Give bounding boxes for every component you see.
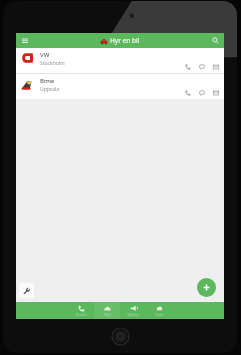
staticText: Bilar [104, 313, 111, 317]
button[interactable]: Kunder [68, 302, 94, 319]
staticText: Väder [155, 313, 164, 317]
button[interactable]: Bilar [94, 302, 120, 319]
staticText: Bmw [40, 77, 55, 85]
button[interactable]: Message [197, 62, 206, 71]
staticText: Uppsala [40, 86, 60, 93]
button[interactable]: Menu [19, 35, 30, 46]
button[interactable]: Bmw [16, 74, 224, 99]
button[interactable]: Väder [146, 302, 172, 319]
staticText: Nyheter [127, 313, 140, 317]
button[interactable]: Nyheter [120, 302, 146, 319]
button[interactable]: Email [211, 88, 220, 97]
button[interactable]: Settings [19, 283, 34, 298]
button[interactable]: Message [197, 88, 206, 97]
button[interactable]: Call [183, 88, 192, 97]
staticText: Stockholm [40, 60, 65, 67]
staticText: VW [40, 51, 50, 59]
staticText: Kunder [76, 313, 87, 317]
button[interactable]: Add [197, 278, 216, 297]
button[interactable]: Search [210, 35, 221, 46]
button[interactable]: VW [16, 48, 224, 73]
staticText: Hyr en bil [110, 36, 140, 45]
button[interactable]: Email [211, 62, 220, 71]
button[interactable]: Call [183, 62, 192, 71]
